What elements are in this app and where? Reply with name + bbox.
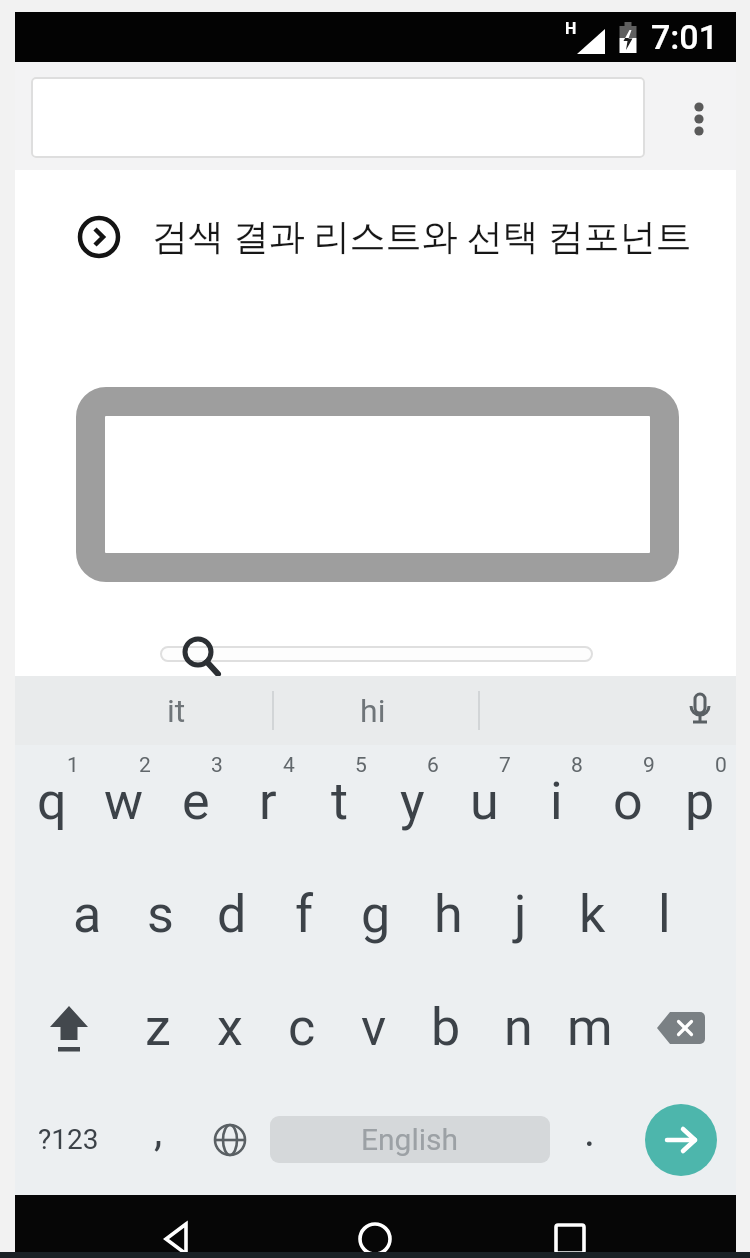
staticText: u [470, 771, 499, 832]
staticText: , [154, 1107, 163, 1156]
button[interactable]: u [448, 745, 520, 858]
staticText: i [550, 771, 563, 832]
staticText: f [295, 884, 314, 945]
button[interactable]: o [592, 745, 664, 858]
staticText: e [182, 771, 210, 832]
button[interactable] [677, 100, 721, 144]
staticText: c [288, 997, 316, 1058]
staticText: p [685, 771, 715, 832]
button[interactable]: r [232, 745, 304, 858]
button[interactable]: j [484, 858, 556, 971]
button[interactable]: a [51, 858, 124, 971]
staticText: ?123 [38, 1123, 99, 1156]
staticText: m [567, 997, 613, 1058]
staticText: 검색 결과 리스트와 선택 컴포넌트 [152, 214, 692, 259]
staticText: q [37, 771, 67, 832]
staticText: 5 [355, 753, 367, 778]
staticText: t [331, 771, 349, 832]
staticText: b [431, 997, 461, 1058]
button[interactable] [148, 1195, 208, 1252]
staticText: English [361, 1122, 459, 1157]
button[interactable] [626, 971, 736, 1084]
button[interactable]: s [124, 858, 196, 971]
staticText: . [584, 1107, 596, 1156]
staticText: h [434, 884, 463, 945]
button[interactable]: x [194, 971, 266, 1084]
staticText: 1 [67, 753, 79, 778]
staticText: 6 [427, 753, 439, 778]
button[interactable]: l [628, 858, 700, 971]
staticText: n [504, 997, 533, 1058]
staticText: o [613, 771, 643, 832]
staticText: 4 [283, 753, 295, 778]
staticText: 7:01 [651, 17, 718, 57]
button[interactable]: w [88, 745, 160, 858]
button[interactable]: it [131, 676, 221, 745]
staticText: a [73, 884, 102, 945]
staticText: 8 [571, 753, 583, 778]
staticText: hi [360, 692, 386, 730]
staticText: z [145, 997, 171, 1058]
staticText: r [259, 771, 277, 832]
button[interactable]: e [160, 745, 232, 858]
button[interactable]: . [554, 1084, 626, 1195]
staticText: x [217, 997, 243, 1058]
button[interactable]: f [268, 858, 340, 971]
button[interactable]: English [266, 1084, 554, 1195]
staticText: j [514, 884, 527, 945]
button[interactable] [645, 1104, 717, 1176]
button[interactable]: i [520, 745, 592, 858]
button[interactable]: ?123 [15, 1084, 122, 1195]
staticText: H [565, 19, 577, 38]
staticText: w [104, 771, 144, 832]
button[interactable]: k [556, 858, 628, 971]
button[interactable]: t [304, 745, 376, 858]
staticText: g [361, 884, 391, 945]
staticText: d [217, 884, 247, 945]
button[interactable] [678, 689, 722, 733]
button[interactable]: d [196, 858, 268, 971]
staticText: v [361, 997, 387, 1058]
button[interactable] [15, 971, 122, 1084]
staticText: 0 [715, 753, 727, 778]
button[interactable] [345, 1195, 405, 1252]
button[interactable]: y [376, 745, 448, 858]
button[interactable]: h [412, 858, 484, 971]
staticText: 7 [499, 753, 511, 778]
staticText: 2 [139, 753, 151, 778]
button[interactable]: q [15, 745, 88, 858]
button[interactable]: z [122, 971, 194, 1084]
staticText: y [400, 771, 425, 832]
staticText: 9 [643, 753, 655, 778]
button[interactable]: hi [328, 676, 418, 745]
button[interactable]: c [266, 971, 338, 1084]
button[interactable]: b [410, 971, 482, 1084]
button[interactable]: v [338, 971, 410, 1084]
button[interactable] [194, 1084, 266, 1195]
staticText: 3 [211, 753, 223, 778]
staticText: k [579, 884, 606, 945]
button[interactable]: , [122, 1084, 194, 1195]
button[interactable]: n [482, 971, 554, 1084]
staticText: it [167, 692, 186, 730]
button[interactable] [540, 1195, 600, 1252]
button[interactable]: m [554, 971, 626, 1084]
staticText: s [147, 884, 174, 945]
staticText: l [658, 884, 671, 945]
button[interactable]: p [664, 745, 736, 858]
button[interactable]: g [340, 858, 412, 971]
button[interactable] [31, 77, 645, 158]
